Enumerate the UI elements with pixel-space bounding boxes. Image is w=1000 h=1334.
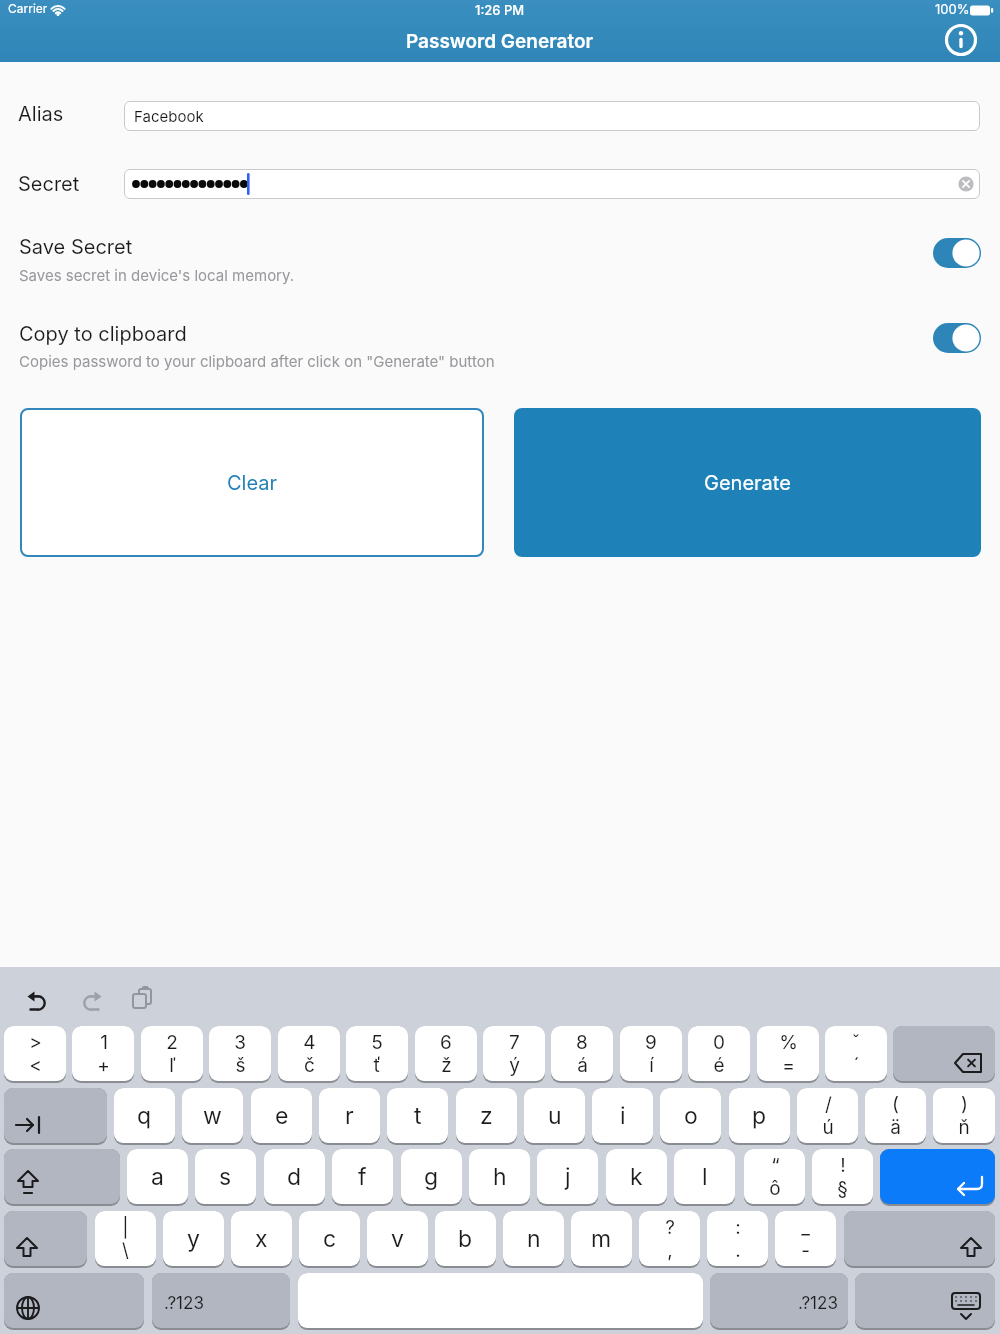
button[interactable]: | <box>95 1211 156 1266</box>
button[interactable]: .?123 <box>710 1273 848 1328</box>
staticText: v <box>391 1225 404 1253</box>
button[interactable] <box>844 1211 995 1266</box>
button[interactable]: Facebook <box>124 101 980 131</box>
staticText: e <box>275 1102 289 1130</box>
staticText: Saves secret in device's local memory. <box>19 266 295 284</box>
button[interactable]: o <box>660 1088 721 1143</box>
button[interactable] <box>880 1149 995 1204</box>
button[interactable]: 9 <box>620 1026 682 1081</box>
button[interactable] <box>298 1273 703 1328</box>
button[interactable]: 4 <box>278 1026 340 1081</box>
button[interactable] <box>124 169 980 199</box>
button[interactable]: 2 <box>141 1026 203 1081</box>
staticText: 1:26 PM <box>475 2 525 18</box>
button[interactable]: v <box>367 1211 428 1266</box>
button[interactable]: c <box>299 1211 360 1266</box>
button[interactable]: 7 <box>483 1026 545 1081</box>
staticText: l <box>702 1163 708 1191</box>
button[interactable]: 6 <box>415 1026 477 1081</box>
button[interactable]: Clear <box>20 408 484 557</box>
staticText: a <box>151 1163 164 1191</box>
button[interactable]: e <box>251 1088 312 1143</box>
button[interactable]: 1 <box>72 1026 134 1081</box>
button[interactable]: b <box>435 1211 496 1266</box>
button[interactable] <box>4 1088 107 1143</box>
button[interactable]: m <box>571 1211 632 1266</box>
staticText: = <box>782 1054 795 1077</box>
button[interactable] <box>4 1273 144 1328</box>
button[interactable]: y <box>163 1211 224 1266</box>
staticText: g <box>424 1163 439 1191</box>
staticText: é <box>713 1054 725 1077</box>
button[interactable]: h <box>469 1149 530 1204</box>
staticText: + <box>97 1054 110 1077</box>
button[interactable]: f <box>332 1149 393 1204</box>
button[interactable]: .?123 <box>152 1273 290 1328</box>
button[interactable]: n <box>503 1211 564 1266</box>
button[interactable]: d <box>264 1149 325 1204</box>
button[interactable]: u <box>524 1088 585 1143</box>
staticText: y <box>187 1225 200 1253</box>
staticText: .?123 <box>798 1293 838 1314</box>
button[interactable]: s <box>195 1149 256 1204</box>
button[interactable] <box>940 20 982 62</box>
button[interactable] <box>933 323 981 353</box>
button[interactable] <box>0 967 1000 1025</box>
button[interactable]: 0 <box>688 1026 750 1081</box>
staticText: ! <box>840 1154 846 1177</box>
button[interactable]: “ <box>744 1149 805 1204</box>
button[interactable] <box>4 1149 120 1204</box>
button[interactable]: 8 <box>551 1026 613 1081</box>
button[interactable]: z <box>456 1088 517 1143</box>
button[interactable] <box>933 238 981 268</box>
button[interactable]: q <box>114 1088 175 1143</box>
staticText: s <box>219 1163 232 1191</box>
staticText: j <box>565 1163 571 1191</box>
button[interactable]: ! <box>812 1149 873 1204</box>
button[interactable] <box>855 1273 995 1328</box>
button[interactable]: l <box>674 1149 735 1204</box>
button[interactable]: a <box>127 1149 188 1204</box>
button[interactable]: p <box>729 1088 790 1143</box>
staticText: Carrier <box>8 1 48 16</box>
button[interactable]: ( <box>865 1088 926 1143</box>
button[interactable] <box>4 1211 87 1266</box>
staticText: p <box>752 1102 767 1130</box>
button[interactable]: : <box>707 1211 768 1266</box>
button[interactable]: x <box>231 1211 292 1266</box>
staticText: / <box>825 1093 832 1116</box>
staticText: . <box>735 1239 741 1262</box>
button[interactable]: j <box>537 1149 598 1204</box>
staticText: u <box>548 1102 562 1130</box>
staticText: č <box>304 1054 315 1077</box>
staticText: 5 <box>371 1031 383 1054</box>
button[interactable]: w <box>182 1088 243 1143</box>
staticText: Secret <box>18 172 80 196</box>
staticText: ň <box>958 1116 970 1139</box>
button[interactable]: % <box>757 1026 819 1081</box>
button[interactable]: > <box>4 1026 66 1081</box>
staticText: b <box>458 1225 473 1253</box>
staticText: ) <box>961 1093 968 1116</box>
button[interactable]: 5 <box>346 1026 408 1081</box>
button[interactable]: r <box>319 1088 380 1143</box>
staticText: o <box>684 1102 698 1130</box>
staticText: Clear <box>227 471 278 495</box>
button[interactable]: k <box>606 1149 667 1204</box>
button[interactable]: Generate <box>514 408 981 557</box>
button[interactable]: ) <box>933 1088 995 1143</box>
button[interactable]: ˇ <box>825 1026 887 1081</box>
staticText: > <box>29 1031 42 1054</box>
button[interactable]: _ <box>775 1211 836 1266</box>
button[interactable]: g <box>401 1149 462 1204</box>
button[interactable]: 3 <box>209 1026 271 1081</box>
staticText: k <box>630 1163 643 1191</box>
staticText: _ <box>801 1216 810 1239</box>
button[interactable]: ? <box>639 1211 700 1266</box>
staticText: 8 <box>576 1031 588 1054</box>
button[interactable]: t <box>387 1088 448 1143</box>
button[interactable]: / <box>797 1088 858 1143</box>
button[interactable] <box>893 1026 995 1081</box>
staticText: 9 <box>645 1031 657 1054</box>
button[interactable]: i <box>592 1088 653 1143</box>
